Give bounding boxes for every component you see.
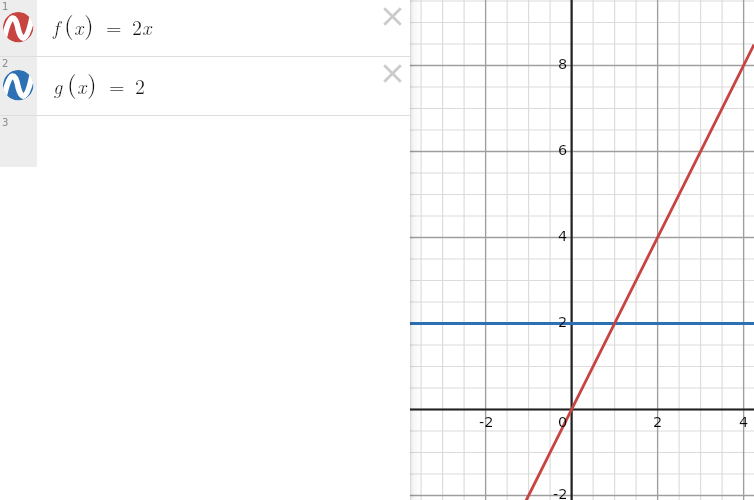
staticText: 0 (558, 414, 568, 431)
staticText: 2 (2, 58, 9, 70)
staticText: ) (87, 65, 97, 100)
staticText: 4 (558, 228, 568, 245)
staticText: ( (67, 65, 77, 100)
staticText: = (109, 71, 125, 99)
staticText: 3 (2, 117, 9, 129)
staticText: -2 (479, 414, 494, 431)
staticText: -2 (553, 486, 568, 500)
staticText: g (53, 71, 63, 99)
button[interactable]: 1 (0, 0, 410, 57)
staticText: 2 (558, 314, 568, 331)
staticText: 2 (653, 414, 663, 431)
staticText: x (77, 71, 87, 99)
staticText: 6 (558, 142, 568, 159)
staticText: 1 (2, 1, 9, 13)
staticText: ( (64, 6, 74, 41)
staticText: 8 (558, 56, 568, 73)
staticText: ) (84, 6, 94, 41)
staticText: = (106, 12, 122, 40)
staticText: x (74, 12, 84, 40)
staticText: 2 (132, 12, 142, 40)
button[interactable]: 2 (0, 57, 410, 116)
staticText: 4 (739, 414, 749, 431)
staticText: f (53, 12, 60, 40)
staticText: x (142, 12, 152, 40)
button[interactable]: Delete expression (383, 64, 402, 83)
staticText: 2 (135, 71, 145, 99)
button[interactable]: 3 (0, 116, 410, 167)
button[interactable]: Delete expression (383, 7, 402, 26)
